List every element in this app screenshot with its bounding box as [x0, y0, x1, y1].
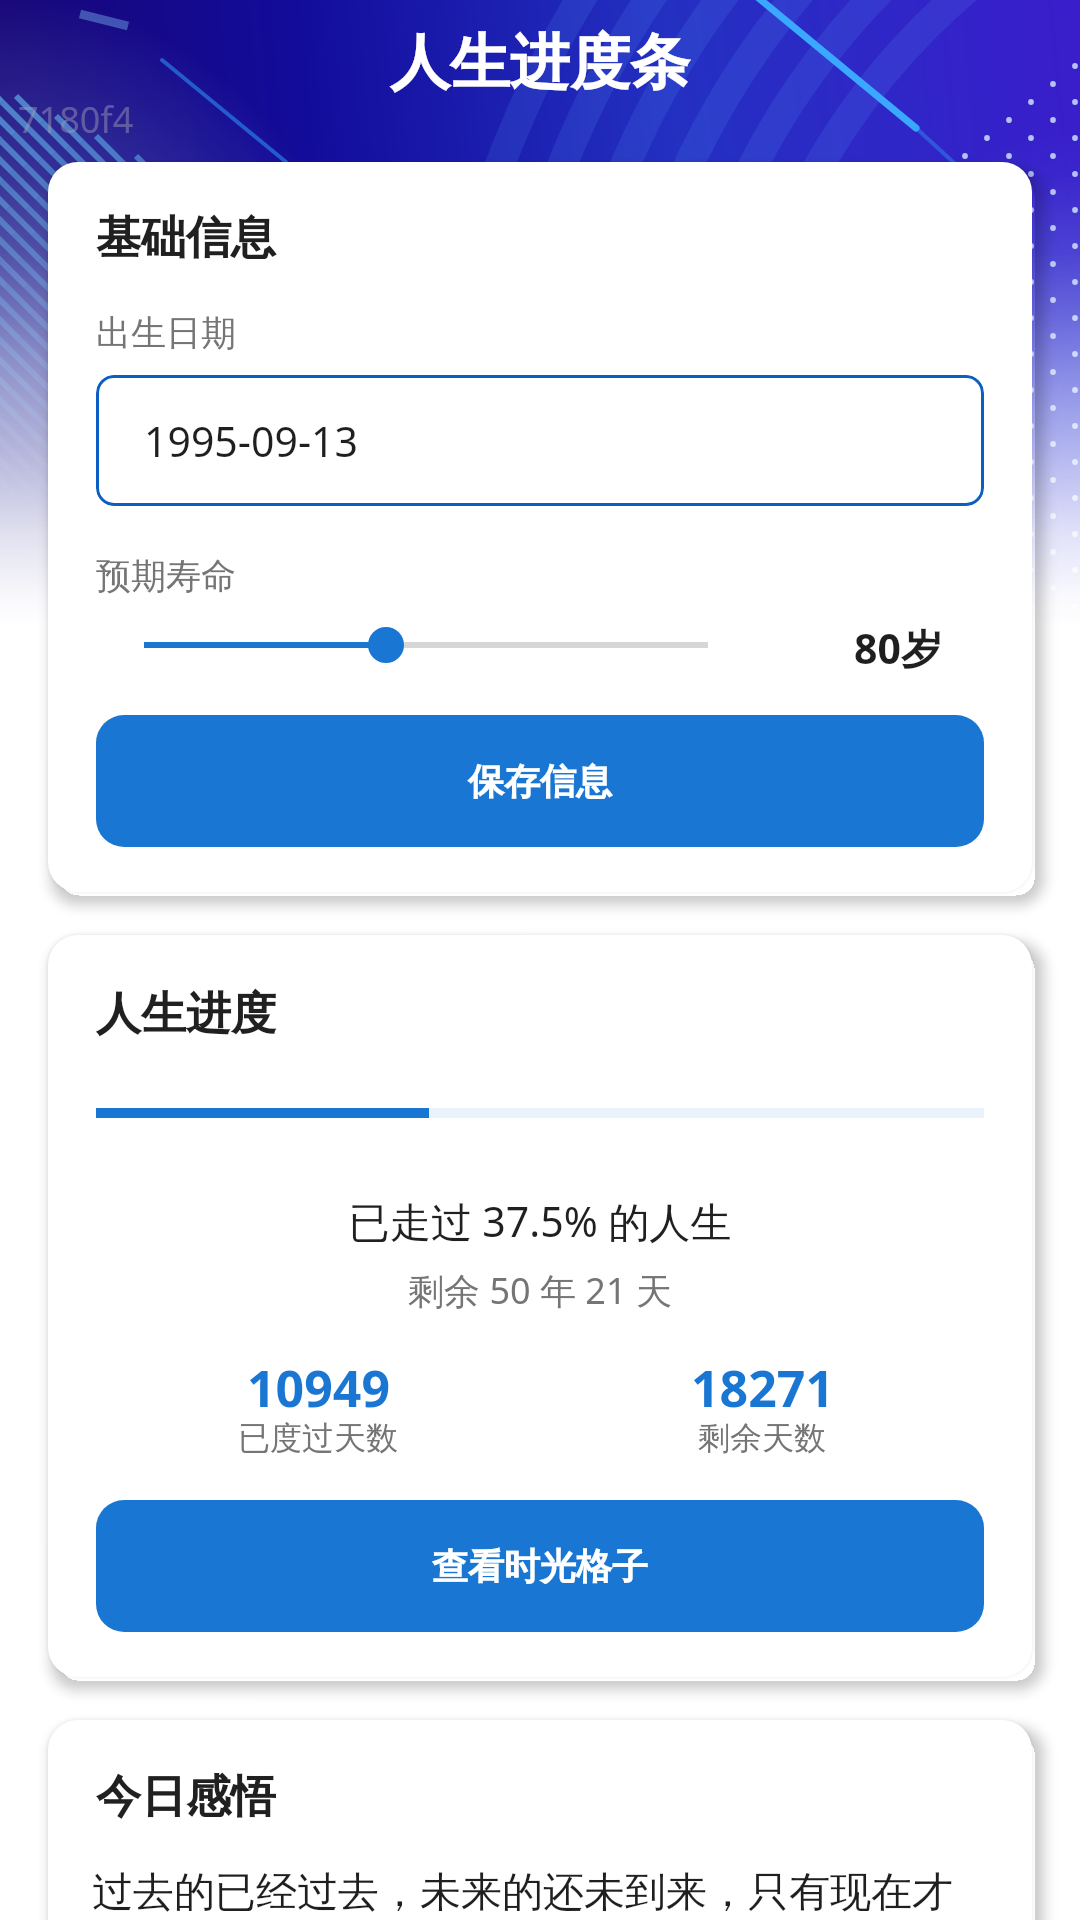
staticText: 10949: [247, 1354, 390, 1422]
staticText: 预期寿命: [96, 554, 236, 598]
staticText: 查看时光格子: [432, 1544, 648, 1589]
staticText: 80岁: [854, 620, 942, 676]
staticText: 已度过天数: [238, 1418, 398, 1458]
staticText: 基础信息: [96, 210, 276, 267]
staticText: 人生进度: [96, 986, 276, 1043]
staticText: 剩余 50 年 21 天: [96, 1266, 984, 1315]
staticText: 1995-09-13: [144, 413, 359, 469]
staticText: 7180f4: [18, 95, 134, 144]
staticText: 出生日期: [96, 311, 236, 355]
staticText: 保存信息: [468, 759, 612, 804]
staticText: 剩余天数: [698, 1418, 826, 1458]
staticText: 今日感悟: [96, 1769, 276, 1826]
staticText: 过去的已经过去，未来的还未到来，只有现在才是真正属于你的。: [92, 1867, 984, 1920]
button[interactable]: 1995-09-13: [96, 375, 984, 506]
staticText: 已走过 37.5% 的人生: [96, 1193, 984, 1249]
staticText: 18271: [691, 1354, 834, 1422]
button[interactable]: 查看时光格子: [96, 1500, 984, 1632]
staticText: 人生进度条: [390, 25, 690, 101]
button[interactable]: 保存信息: [96, 715, 984, 847]
